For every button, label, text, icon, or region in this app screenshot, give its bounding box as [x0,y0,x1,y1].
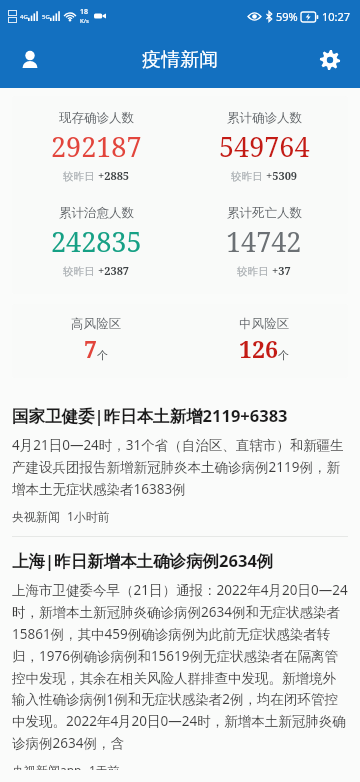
staticText: 7 [84,333,97,364]
staticText: 18 [80,7,89,17]
staticText: 10:27 [322,9,351,24]
staticText: 4月21日0—24时，31个省（自治区、直辖市）和新疆生产建设兵团报告新增新冠肺… [12,436,348,498]
staticText: 累计治愈人数 [59,205,134,221]
staticText: 累计死亡人数 [227,205,302,221]
staticText: 549764 [219,128,310,165]
staticText: K/s [80,17,89,25]
button[interactable]: 现存确诊人数 [12,110,180,183]
staticText: 较昨日 [63,264,98,278]
staticText: 个 [278,348,289,362]
staticText: 现存确诊人数 [59,110,134,126]
staticText: 4G [20,13,28,21]
button[interactable]: 高风险区 [12,304,348,378]
staticText: 242835 [51,223,142,260]
button[interactable]: 上海|昨日新增本土确诊病例2634例 [0,537,360,782]
button[interactable]: Settings [308,38,352,82]
staticText: +37 [272,263,291,278]
staticText: 国家卫健委|昨日本土新增2119+6383 [12,404,288,427]
staticText: 上海|昨日新增本土确诊病例2634例 [12,549,274,572]
staticText: 较昨日 [63,169,98,183]
staticText: 上海市卫健委今早（21日）通报：2022年4月20日0—24时，新增本土新冠肺炎… [12,581,348,752]
staticText: +2885 [98,168,130,183]
button[interactable]: 国家卫健委|昨日本土新增2119+6383 [0,392,360,536]
staticText: 累计确诊人数 [227,110,302,126]
button[interactable]: 中风险区 [180,316,348,364]
staticText: 高风险区 [71,316,121,332]
staticText: 1天前 [89,762,120,770]
staticText: +5309 [266,168,298,183]
button[interactable]: 现存确诊人数 [12,96,348,294]
staticText: 较昨日 [237,264,272,278]
staticText: 1小时前 [67,508,110,524]
staticText: 14742 [226,223,302,260]
staticText: 59% [276,9,298,24]
button[interactable]: 累计死亡人数 [180,205,348,278]
staticText: 较昨日 [231,169,266,183]
staticText: 个 [97,348,108,362]
staticText: 5G [42,13,50,21]
button[interactable]: 高风险区 [12,316,180,364]
staticText: 央视新闻 [12,509,60,524]
staticText: 292187 [51,128,142,165]
staticText: 疫情新闻 [142,48,218,72]
staticText: 126 [239,333,278,364]
button[interactable]: Profile [8,38,52,82]
staticText: 央视新闻app [12,762,82,770]
button[interactable]: 累计治愈人数 [12,205,180,278]
staticText: 中风险区 [239,316,289,332]
button[interactable]: 累计确诊人数 [180,110,348,183]
staticText: +2387 [98,263,130,278]
